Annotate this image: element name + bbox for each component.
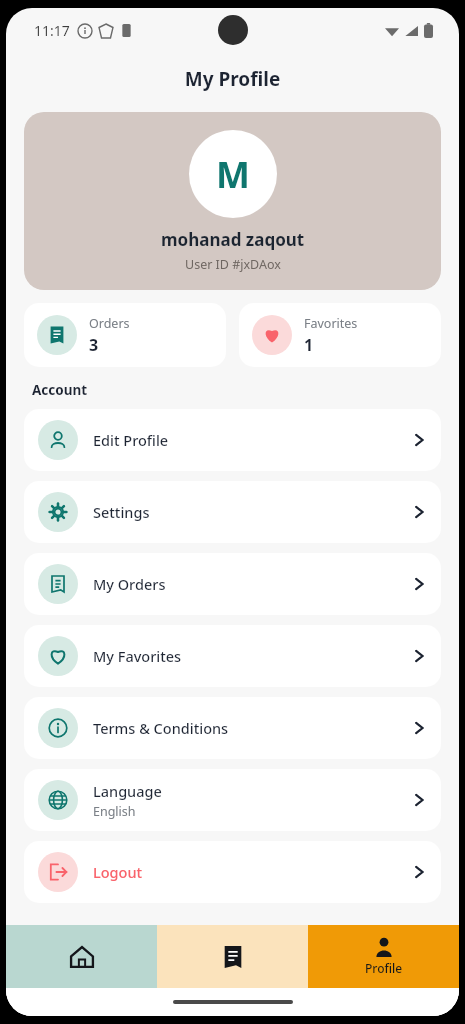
button[interactable]: Terms & Conditions bbox=[24, 697, 441, 759]
staticText: Account bbox=[32, 381, 88, 399]
staticText: My Favorites bbox=[93, 646, 182, 666]
button[interactable]: Orders bbox=[24, 303, 226, 367]
button[interactable]: Settings bbox=[24, 481, 441, 543]
button[interactable]: Profile bbox=[308, 925, 459, 988]
staticText: My Orders bbox=[93, 574, 166, 594]
button[interactable]: Home bbox=[6, 925, 157, 988]
staticText: Edit Profile bbox=[93, 430, 169, 450]
button[interactable]: Favorites bbox=[239, 303, 441, 367]
staticText: Language bbox=[93, 781, 162, 801]
staticText: Orders bbox=[89, 315, 130, 332]
button[interactable]: M bbox=[24, 112, 441, 290]
staticText: M bbox=[216, 150, 250, 199]
staticText: User ID #jxDAox bbox=[185, 256, 281, 273]
button[interactable]: Orders bbox=[157, 925, 308, 988]
button[interactable]: Logout bbox=[24, 841, 441, 903]
staticText: mohanad zaqout bbox=[161, 228, 305, 251]
staticText: Logout bbox=[93, 862, 143, 882]
staticText: Profile bbox=[365, 960, 403, 976]
staticText: Settings bbox=[93, 502, 150, 522]
staticText: Favorites bbox=[304, 315, 358, 332]
button[interactable]: My Orders bbox=[24, 553, 441, 615]
staticText: 3 bbox=[89, 334, 99, 356]
staticText: English bbox=[93, 803, 136, 820]
staticText: 11:17 bbox=[34, 21, 70, 40]
button[interactable]: My Favorites bbox=[24, 625, 441, 687]
staticText: Terms & Conditions bbox=[93, 718, 229, 738]
staticText: My Profile bbox=[6, 66, 459, 92]
staticText: 1 bbox=[304, 334, 314, 356]
button[interactable]: Language bbox=[24, 769, 441, 831]
button[interactable]: Edit Profile bbox=[24, 409, 441, 471]
